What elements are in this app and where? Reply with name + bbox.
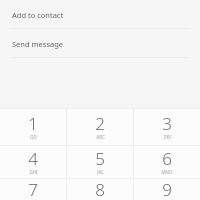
staticText: 6 (162, 147, 172, 170)
staticText: 4 (28, 147, 38, 170)
button[interactable]: 3 (134, 108, 200, 145)
staticText: 7 (28, 178, 38, 200)
staticText: QD (30, 134, 37, 140)
button[interactable]: 8 (67, 178, 133, 200)
staticText: 5 (95, 147, 105, 170)
staticText: DEF (163, 134, 172, 140)
staticText: JKL (97, 169, 104, 175)
staticText: Send message (12, 39, 64, 49)
staticText: ABC (96, 134, 105, 140)
staticText: 1 (28, 112, 38, 135)
button[interactable]: 6 (134, 145, 200, 178)
staticText: 8 (95, 178, 105, 200)
button[interactable]: Send message (0, 29, 200, 58)
button[interactable]: 5 (67, 145, 133, 178)
button[interactable]: 4 (0, 145, 66, 178)
staticText: Add to contact (12, 10, 64, 20)
button[interactable]: Add to contact (0, 0, 200, 29)
button[interactable]: 7 (0, 178, 66, 200)
button[interactable]: 9 (134, 178, 200, 200)
button[interactable]: 1 (0, 108, 66, 145)
staticText: 9 (162, 178, 172, 200)
button[interactable]: 2 (67, 108, 133, 145)
staticText: 3 (162, 112, 172, 135)
staticText: MNO (161, 169, 173, 175)
staticText: 2 (95, 112, 105, 135)
staticText: GHI (29, 169, 38, 175)
